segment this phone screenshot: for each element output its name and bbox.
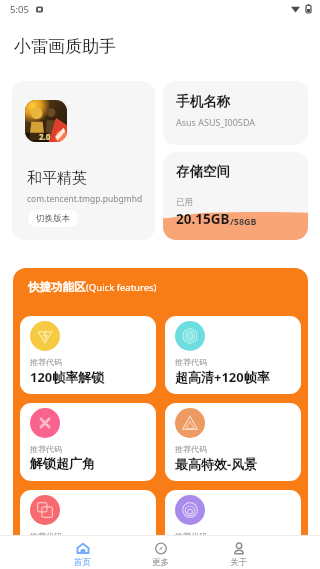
button[interactable]: 更多: [121, 536, 199, 569]
staticText: 关于: [230, 557, 247, 568]
button[interactable]: 推荐代码: [20, 316, 156, 394]
staticText: 推荐代码: [30, 444, 62, 454]
staticText: 5:05: [10, 3, 29, 16]
staticText: com.tencent.tmgp.pubgmhd: [27, 193, 143, 205]
staticText: Asus ASUS_I005DA: [176, 116, 256, 128]
staticText: /58GB: [230, 215, 257, 227]
button[interactable]: 2.0: [12, 81, 155, 240]
staticText: 切换版本: [36, 213, 70, 224]
button[interactable]: 首页: [43, 536, 121, 569]
button[interactable]: 推荐代码: [165, 403, 301, 481]
staticText: 快捷功能区: [28, 280, 86, 294]
button[interactable]: 切换版本: [28, 210, 78, 227]
staticText: 20.15GB: [176, 210, 230, 228]
staticText: 存储空间: [176, 163, 230, 180]
staticText: 解锁超广角: [30, 455, 95, 471]
staticText: 超高清+120帧率: [175, 368, 270, 386]
button[interactable]: 关于: [199, 536, 277, 569]
button[interactable]: 存储空间: [163, 152, 308, 240]
staticText: 推荐代码: [30, 357, 62, 367]
staticText: 推荐代码: [30, 531, 62, 541]
staticText: 手机名称: [176, 93, 230, 110]
staticText: 小雷画质助手: [14, 36, 116, 57]
staticText: 已用: [176, 197, 193, 208]
staticText: 和平精英: [27, 169, 87, 188]
staticText: 首页: [74, 557, 91, 568]
staticText: 120帧率解锁: [30, 368, 105, 386]
button[interactable]: 推荐代码: [165, 316, 301, 394]
button[interactable]: 推荐代码: [165, 490, 301, 568]
button[interactable]: 推荐代码: [20, 490, 156, 568]
staticText: 推荐代码: [175, 444, 207, 454]
staticText: 更多: [152, 557, 169, 568]
staticText: (Quick features): [86, 281, 157, 294]
button[interactable]: 推荐代码: [20, 403, 156, 481]
staticText: 2.0: [39, 131, 51, 142]
staticText: 最高特效-风景: [175, 455, 258, 473]
staticText: 推荐代码: [175, 357, 207, 367]
button[interactable]: 手机名称: [163, 81, 308, 145]
staticText: 推荐代码: [175, 531, 207, 541]
